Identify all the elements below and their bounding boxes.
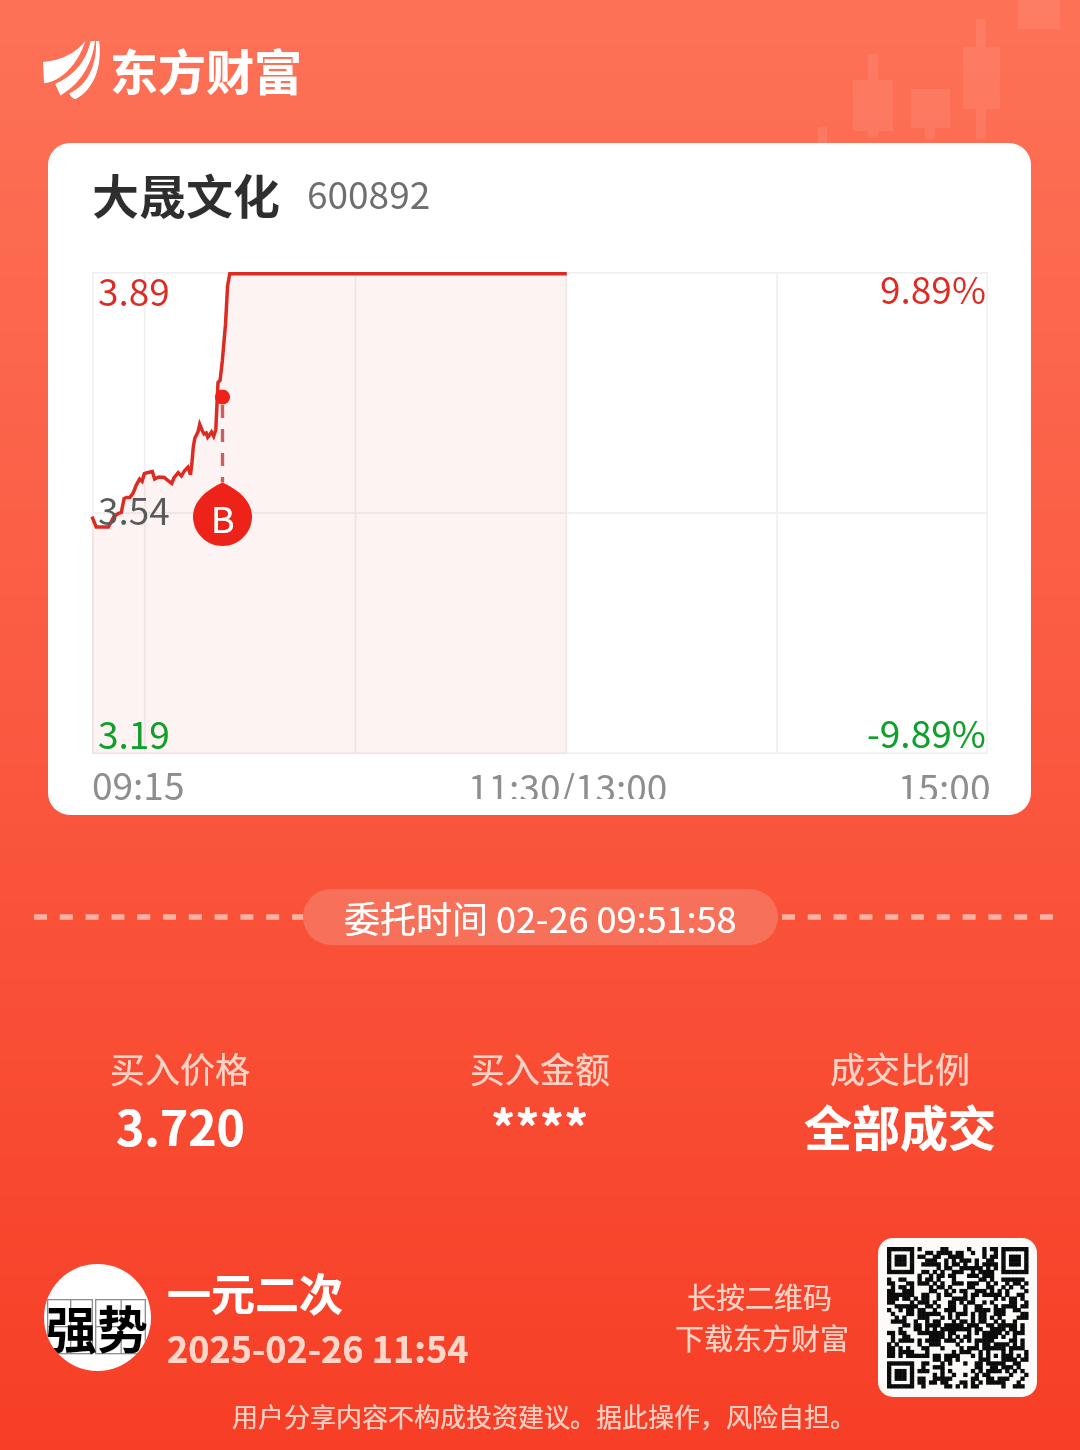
staticText: 一元二次 bbox=[167, 1260, 343, 1324]
staticText: 长按二维码 bbox=[687, 1275, 833, 1315]
staticText: 全部成交 bbox=[804, 1090, 997, 1160]
staticText: 用户分享内容不构成投资建议。据此操作，风险自担。 bbox=[4, 1397, 1080, 1435]
staticText: 600892 bbox=[307, 166, 431, 220]
staticText: 2025-02-26 11:54 bbox=[167, 1321, 469, 1373]
staticText: 买入金额 bbox=[470, 1042, 611, 1093]
button[interactable]: 大晟文化 bbox=[48, 143, 1031, 815]
staticText: 3.720 bbox=[116, 1090, 245, 1160]
staticText: 3.89 bbox=[98, 263, 170, 317]
button[interactable]: 东方财富 East Money bbox=[38, 30, 318, 110]
staticText: 15:00 bbox=[898, 759, 991, 799]
staticText: 3.54 bbox=[98, 482, 170, 536]
staticText: 东方财富 bbox=[110, 34, 303, 104]
staticText: B bbox=[211, 491, 235, 543]
staticText: 买入价格 bbox=[110, 1042, 251, 1093]
staticText: 11:30/13:00 bbox=[468, 759, 668, 799]
staticText: 大晟文化 bbox=[92, 159, 280, 227]
staticText: **** bbox=[491, 1090, 589, 1160]
staticText: 强势 bbox=[46, 1290, 149, 1364]
button[interactable]: 长按二维码下载东方财富 bbox=[660, 1230, 1040, 1405]
staticText: 09:15 bbox=[92, 757, 185, 811]
button[interactable]: 委托时间 02-26 09:51:58 bbox=[344, 889, 737, 945]
button[interactable]: 买入金额 bbox=[360, 1042, 720, 1163]
staticText: 成交比例 bbox=[830, 1042, 971, 1093]
button[interactable]: 买入价格 bbox=[0, 1042, 360, 1163]
button[interactable]: 强势 bbox=[44, 1259, 469, 1375]
staticText: 委托时间 02-26 09:51:58 bbox=[344, 891, 737, 943]
staticText: 9.89% bbox=[880, 261, 986, 315]
button[interactable]: 成交比例 bbox=[720, 1042, 1080, 1163]
staticText: 下载东方财富 bbox=[675, 1316, 850, 1356]
staticText: -9.89% bbox=[867, 705, 986, 759]
staticText: 3.19 bbox=[98, 706, 170, 760]
